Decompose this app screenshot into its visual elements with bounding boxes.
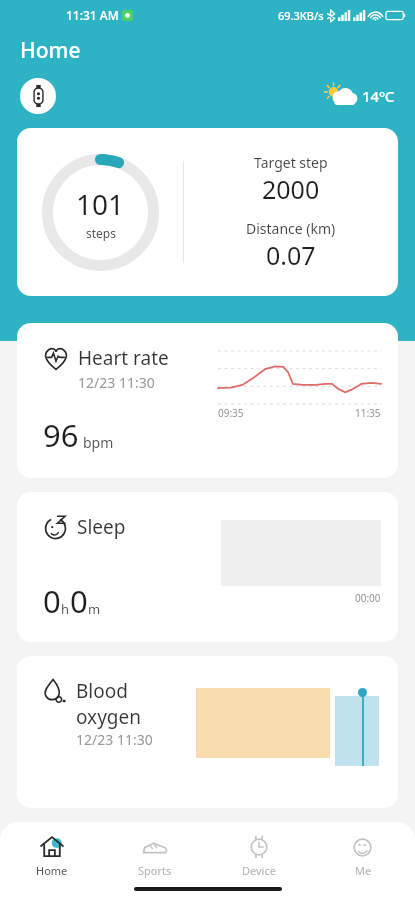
button[interactable]: Device xyxy=(207,830,311,882)
staticText: 11:35 xyxy=(355,406,381,420)
staticText: m xyxy=(88,600,101,618)
button[interactable]: Home xyxy=(0,830,103,882)
staticText: Sleep xyxy=(77,514,126,540)
staticText: bpm xyxy=(83,433,114,452)
button[interactable]: 101 xyxy=(17,128,398,296)
staticText: 12/23 11:30 xyxy=(78,373,155,392)
staticText: Home xyxy=(36,863,68,878)
staticText: 11:31 AM xyxy=(66,7,119,23)
button[interactable]: Blood xyxy=(17,656,398,808)
staticText: 0 xyxy=(70,580,88,622)
staticText: 101 xyxy=(76,185,125,223)
staticText: 14ºC xyxy=(362,86,395,106)
staticText: Heart rate xyxy=(78,345,169,371)
staticText: Home xyxy=(20,36,81,65)
button[interactable]: Heart rate xyxy=(17,323,398,478)
staticText: Target step xyxy=(254,153,328,172)
button[interactable]: Sports xyxy=(103,830,207,882)
staticText: Device xyxy=(242,863,276,878)
staticText: 12/23 11:30 xyxy=(76,730,153,749)
button[interactable]: Me xyxy=(311,830,415,882)
staticText: oxygen xyxy=(76,704,141,730)
staticText: 2000 xyxy=(262,172,320,206)
staticText: 0 xyxy=(43,580,61,622)
staticText: 96 xyxy=(43,414,79,456)
staticText: h xyxy=(61,600,70,618)
staticText: 69.3KB/s xyxy=(278,8,324,23)
staticText: Sports xyxy=(138,863,172,878)
staticText: Me xyxy=(355,863,372,878)
staticText: 09:35 xyxy=(218,406,244,420)
staticText: steps xyxy=(86,225,116,241)
staticText: Blood xyxy=(76,678,128,704)
button[interactable]: Sleep xyxy=(17,492,398,642)
staticText: 00:00 xyxy=(355,591,381,605)
staticText: 0.07 xyxy=(266,238,316,272)
staticText: Distance (km) xyxy=(246,219,336,238)
button[interactable]: 14ºC xyxy=(323,84,395,108)
button[interactable]: My watch xyxy=(20,78,56,114)
